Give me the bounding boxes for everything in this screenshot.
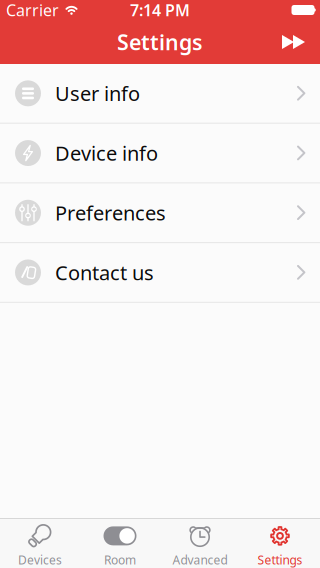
button[interactable]: Contact us — [0, 243, 320, 303]
staticText: Contact us — [55, 259, 154, 286]
staticText: 7:14 PM — [130, 0, 190, 21]
staticText: Preferences — [55, 199, 166, 226]
staticText: Carrier — [6, 0, 59, 21]
button[interactable]: Preferences — [0, 183, 320, 243]
staticText: Room — [104, 552, 136, 568]
button[interactable]: Device info — [0, 124, 320, 183]
button[interactable]: User info — [0, 64, 320, 124]
button[interactable]: Room — [80, 519, 160, 568]
staticText: User info — [55, 80, 140, 107]
staticText: Advanced — [172, 552, 227, 568]
staticText: Devices — [18, 552, 62, 568]
button[interactable]: Fast forward — [282, 35, 320, 49]
button[interactable]: Advanced — [160, 519, 240, 568]
button[interactable]: Devices — [0, 519, 80, 568]
button[interactable]: Settings — [240, 519, 320, 568]
staticText: Settings — [117, 28, 203, 56]
staticText: Settings — [257, 552, 302, 568]
staticText: Device info — [55, 140, 158, 166]
